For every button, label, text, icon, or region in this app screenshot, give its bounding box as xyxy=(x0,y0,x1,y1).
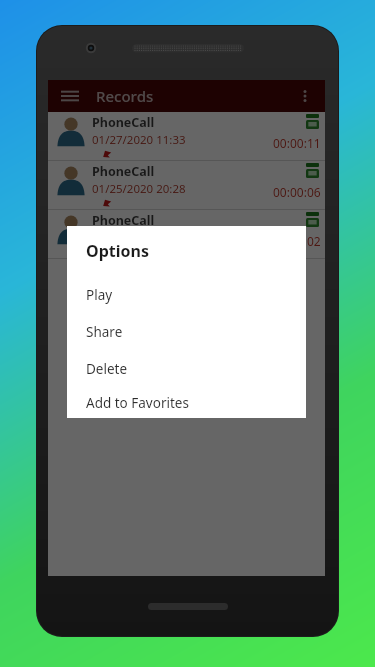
button[interactable]: More options xyxy=(293,84,317,108)
staticText: Add to Favorites xyxy=(86,394,189,412)
button[interactable]: PhoneCall xyxy=(48,112,325,160)
staticText: 00:00:02 xyxy=(273,233,321,249)
staticText: 00:00:06 xyxy=(273,184,321,200)
button[interactable]: Delete xyxy=(67,350,306,387)
staticText: Delete xyxy=(86,360,128,378)
staticText: Share xyxy=(86,323,123,341)
button[interactable]: Share xyxy=(67,313,306,350)
staticText: 01/27/2020 11:33 xyxy=(92,132,186,148)
button[interactable]: Add to Favorites xyxy=(67,387,306,418)
button[interactable]: Open navigation menu xyxy=(58,84,82,108)
button[interactable]: Play xyxy=(67,276,306,313)
staticText: Options xyxy=(86,240,149,262)
staticText: PhoneCall xyxy=(92,163,155,180)
button[interactable]: PhoneCall xyxy=(48,161,325,209)
staticText: Records xyxy=(96,86,154,106)
staticText: 01/25/2020 20:28 xyxy=(92,181,186,197)
staticText: Play xyxy=(86,286,113,304)
staticText: 00:00:11 xyxy=(273,135,321,151)
staticText: PhoneCall xyxy=(92,114,155,131)
staticText: 01/24/2020 09:14 xyxy=(92,230,186,246)
staticText: PhoneCall xyxy=(92,212,155,229)
button[interactable]: PhoneCall xyxy=(48,210,325,258)
